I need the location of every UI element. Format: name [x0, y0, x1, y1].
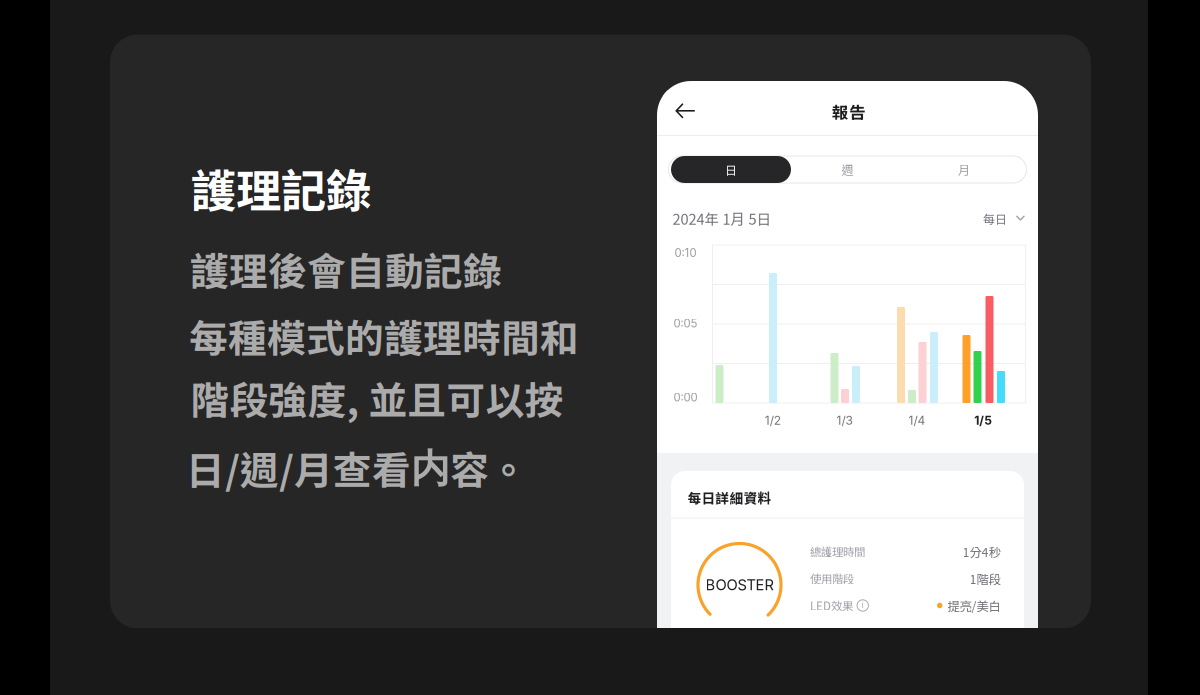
- staticText: 1階段: [969, 569, 1000, 587]
- button[interactable]: 日: [671, 156, 791, 183]
- staticText: 階段強度, 並且可以按: [190, 370, 563, 426]
- staticText: 1/3: [837, 413, 853, 428]
- staticText: 護理記錄: [191, 155, 371, 221]
- staticText: 總護理時間: [810, 543, 865, 560]
- staticText: 日: [725, 161, 737, 178]
- staticText: 0:10: [674, 246, 696, 260]
- staticText: i: [862, 600, 864, 610]
- staticText: 每日: [983, 210, 1007, 227]
- staticText: 提亮/美白: [947, 596, 1000, 614]
- staticText: 1/5: [974, 413, 992, 428]
- staticText: 0:00: [673, 391, 697, 404]
- staticText: 1/2: [765, 413, 781, 428]
- button[interactable]: Back: [663, 90, 707, 132]
- staticText: 月: [958, 161, 970, 178]
- staticText: 每種模式的護理時間和: [189, 308, 579, 364]
- staticText: 0:05: [673, 317, 697, 330]
- staticText: LED效果: [810, 597, 853, 614]
- staticText: 1/4: [908, 413, 925, 428]
- staticText: 1分4秒: [962, 542, 1000, 560]
- staticText: 每日詳細資料: [687, 488, 771, 507]
- staticText: BOOSTER: [705, 576, 773, 594]
- staticText: 使用階段: [810, 570, 854, 587]
- staticText: 報告: [832, 99, 866, 123]
- button[interactable]: 每日: [983, 206, 1025, 230]
- staticText: 2024年 1月 5日: [672, 208, 771, 229]
- button[interactable]: 週: [788, 156, 906, 183]
- staticText: 週: [841, 161, 853, 178]
- staticText: 日/週/月查看内容。: [186, 440, 528, 496]
- button[interactable]: 月: [905, 156, 1023, 183]
- staticText: 護理後會自動記錄: [190, 241, 502, 297]
